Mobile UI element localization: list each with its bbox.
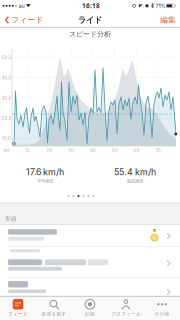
staticText: 30.0 <box>1 95 11 101</box>
staticText: 最高速度 <box>127 178 143 184</box>
button[interactable]: プロフィール <box>108 296 144 319</box>
button[interactable]: 記録 <box>72 296 108 319</box>
staticText: 17.6 km/h <box>26 167 64 177</box>
staticText: その他 <box>154 311 169 317</box>
staticText: 70 <box>156 148 161 153</box>
staticText: 30 <box>68 148 74 153</box>
button[interactable]: 実績 <box>0 225 180 247</box>
staticText: 20 <box>46 148 52 153</box>
button[interactable]: フィード <box>1 13 47 27</box>
staticText: 平均速度 <box>37 178 53 184</box>
staticText: フィード <box>8 311 28 317</box>
staticText: 55.4 km/h <box>114 167 156 177</box>
staticText: 実績 <box>5 215 17 223</box>
staticText: 友達を探す <box>41 311 66 317</box>
button[interactable]: 詳細 <box>0 277 180 296</box>
staticText: 10 <box>25 148 30 153</box>
staticText: 50.0 <box>1 55 11 60</box>
staticText: 40.0 <box>1 75 11 81</box>
staticText: 40 <box>90 148 96 153</box>
staticText: 記録 <box>85 311 95 317</box>
button[interactable]: フィード <box>0 296 36 319</box>
staticText: 編集 <box>160 15 176 25</box>
staticText: 71% <box>155 2 165 9</box>
staticText: 50 <box>112 148 118 153</box>
staticText: スピード分析 <box>69 29 111 39</box>
button[interactable]: 友達を探す <box>36 296 72 319</box>
staticText: 10.0 <box>2 136 11 141</box>
staticText: 60 <box>133 148 139 153</box>
button[interactable]: アクティビティ詳細 <box>0 247 180 277</box>
staticText: ライド <box>78 15 102 25</box>
staticText: プロフィール <box>111 311 141 317</box>
staticText: 20.0 <box>1 116 11 121</box>
button[interactable]: その他 <box>144 296 180 319</box>
staticText: au <box>18 2 24 9</box>
staticText: km <box>4 148 10 153</box>
staticText: 16:18 <box>82 1 100 10</box>
staticText: フィード <box>11 15 43 25</box>
button[interactable]: 編集 <box>157 13 179 27</box>
